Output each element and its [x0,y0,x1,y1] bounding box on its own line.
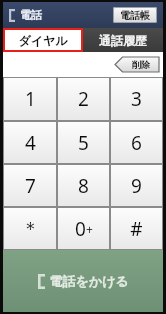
button[interactable]: 通話履歴 [83,28,163,52]
staticText: 3 [131,86,142,112]
staticText: 2 [78,86,89,112]
button[interactable]: 電話帳 [113,7,157,23]
staticText: 7 [25,173,36,199]
button[interactable]: 9 [110,164,163,207]
staticText: 1 [25,86,36,112]
button[interactable]: 5 [57,121,110,164]
button[interactable]: 6 [110,121,163,164]
staticText: 6 [131,130,142,156]
button[interactable]: 1 [3,77,57,121]
staticText: 0 [75,216,86,242]
staticText: ダイヤル [18,33,68,48]
staticText: 電話をかける [49,273,129,289]
button[interactable]: 4 [3,121,57,164]
staticText: # [130,216,143,242]
staticText: 4 [25,130,36,156]
button[interactable]: # [110,207,163,250]
staticText: 5 [78,130,89,156]
button[interactable]: 電話をかける [3,250,163,312]
button[interactable]: 3 [110,77,163,121]
staticText: 電話 [20,8,42,22]
staticText: 電話帳 [120,9,150,22]
button[interactable]: ダイヤル [3,28,83,52]
staticText: 8 [78,173,89,199]
staticText: 9 [131,173,142,199]
button[interactable]: 8 [57,164,110,207]
button[interactable]: 7 [3,164,57,207]
button[interactable]: ＊ [3,207,57,250]
button[interactable]: 0 [57,207,110,250]
staticText: 通話履歴 [99,33,147,48]
staticText: 削除 [132,59,150,70]
button[interactable]: 2 [57,77,110,121]
button[interactable]: 削除 [115,57,159,72]
staticText: + [86,221,93,237]
staticText: ＊ [21,217,40,241]
